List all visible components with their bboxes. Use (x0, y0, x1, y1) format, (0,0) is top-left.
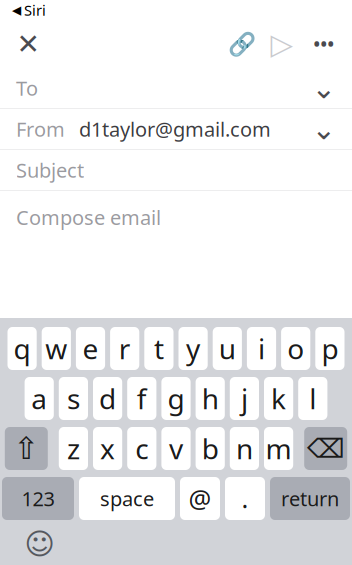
staticText: ••• (313, 32, 334, 55)
staticText: ✕ (16, 28, 39, 60)
staticText: k (271, 380, 286, 417)
staticText: 123 (21, 485, 54, 512)
staticText: a (31, 380, 47, 417)
staticText: Compose email (16, 204, 161, 231)
staticText: ◀ (12, 3, 21, 17)
button[interactable]: f (127, 377, 156, 420)
staticText: s (67, 380, 80, 417)
button[interactable]: @ (180, 477, 220, 520)
staticText: n (236, 430, 253, 467)
staticText: ▷ (270, 27, 293, 61)
staticText: z (67, 430, 80, 467)
staticText: m (266, 430, 292, 467)
staticText: w (45, 330, 67, 367)
staticText: q (14, 330, 31, 367)
staticText: p (321, 330, 338, 367)
staticText: . (241, 482, 248, 515)
button[interactable]: From (0, 109, 352, 150)
button[interactable]: s (59, 377, 88, 420)
staticText: space (100, 485, 154, 512)
button[interactable]: Compose email (0, 191, 352, 265)
staticText: e (82, 330, 98, 367)
staticText: @ (188, 482, 211, 515)
staticText: Subject (16, 157, 84, 183)
button[interactable]: return (270, 477, 350, 520)
staticText: f (137, 380, 147, 417)
button[interactable]: More options (302, 22, 346, 66)
button[interactable]: . (225, 477, 265, 520)
button[interactable]: Emoji (20, 527, 60, 561)
button[interactable]: a (25, 377, 54, 420)
staticText: From (16, 116, 65, 142)
button[interactable]: i (247, 327, 276, 370)
staticText: Siri (24, 0, 46, 20)
button[interactable]: To (0, 68, 352, 109)
staticText: h (202, 380, 219, 417)
button[interactable]: g (161, 377, 191, 420)
button[interactable]: l (298, 377, 327, 420)
staticText: ⇧ (13, 431, 39, 466)
staticText: l (309, 380, 316, 417)
staticText: return (281, 485, 339, 512)
staticText: y (186, 330, 200, 367)
button[interactable]: w (42, 327, 71, 370)
staticText: r (119, 330, 131, 367)
staticText: d (99, 380, 116, 417)
staticText: b (202, 430, 219, 467)
button[interactable]: 123 (2, 477, 74, 520)
staticText: o (287, 330, 304, 367)
button[interactable]: k (264, 377, 293, 420)
button[interactable]: y (178, 327, 208, 370)
button[interactable]: d (93, 377, 122, 420)
button[interactable]: t (144, 327, 173, 370)
staticText: ⌫ (307, 433, 345, 464)
button[interactable]: j (230, 377, 259, 420)
button[interactable]: v (161, 427, 191, 470)
staticText: c (135, 430, 148, 467)
button[interactable]: Delete (304, 427, 347, 470)
staticText: j (241, 380, 248, 417)
button[interactable]: Shift (5, 427, 48, 470)
staticText: ☺ (24, 527, 55, 561)
button[interactable]: r (110, 327, 139, 370)
staticText: u (219, 330, 236, 367)
button[interactable]: Subject (0, 150, 352, 191)
staticText: 🔗 (228, 31, 256, 57)
staticText: i (258, 330, 265, 367)
staticText: v (169, 430, 183, 467)
button[interactable]: n (230, 427, 259, 470)
button[interactable]: m (264, 427, 293, 470)
button[interactable]: q (7, 327, 37, 370)
staticText: ⌄ (311, 71, 336, 105)
staticText: t (154, 330, 164, 367)
button[interactable]: z (59, 427, 88, 470)
button[interactable]: u (213, 327, 242, 370)
button[interactable]: o (281, 327, 310, 370)
button[interactable]: x (93, 427, 122, 470)
button[interactable]: Attach file (222, 22, 262, 66)
staticText: d1taylor@gmail.com (79, 116, 271, 142)
button[interactable]: Send (262, 22, 302, 66)
button[interactable]: space (79, 477, 175, 520)
button[interactable]: e (76, 327, 105, 370)
staticText: ⌄ (311, 112, 336, 146)
button[interactable]: h (196, 377, 225, 420)
button[interactable]: b (196, 427, 225, 470)
button[interactable]: p (315, 327, 344, 370)
staticText: To (16, 75, 38, 101)
button[interactable]: Close (6, 22, 50, 66)
button[interactable]: c (127, 427, 156, 470)
staticText: g (167, 380, 184, 417)
staticText: x (100, 430, 115, 467)
